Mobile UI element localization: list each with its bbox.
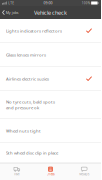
staticText: 09:00	[43, 1, 52, 5]
button[interactable]: 5th wheel disc clip in place	[0, 143, 101, 163]
staticText: 5th wheel disc clip in place	[6, 150, 58, 156]
button[interactable]: My jobs	[0, 6, 21, 19]
staticText: LTE	[8, 1, 14, 5]
staticText: Wheel nuts tight	[6, 128, 41, 134]
staticText: My jobs	[6, 10, 19, 15]
staticText: Airlines electric suzies	[6, 76, 49, 82]
button[interactable]: Wheel nuts tight	[0, 119, 101, 143]
staticText: 100%	[82, 1, 90, 5]
staticText: Messages	[79, 173, 89, 176]
button[interactable]: Airlines electric suzies	[0, 67, 101, 91]
button[interactable]: No tyre cuts, bald spots and pressure ok	[0, 91, 101, 119]
button[interactable]: Glass lenses mirrors	[0, 43, 101, 67]
button[interactable]: Lights indicators reflectors	[0, 19, 101, 43]
button[interactable]: Checks	[34, 164, 67, 179]
staticText: Checks	[46, 173, 54, 176]
button[interactable]: Messages	[67, 164, 101, 179]
staticText: No tyre cuts, bald spots and pressure ok	[6, 99, 55, 110]
button[interactable]: Travel	[0, 164, 34, 179]
staticText: Vehicle check	[34, 9, 67, 16]
staticText: Travel	[14, 173, 20, 176]
staticText: Glass lenses mirrors	[6, 52, 46, 58]
staticText: Lights indicators reflectors	[6, 28, 62, 34]
